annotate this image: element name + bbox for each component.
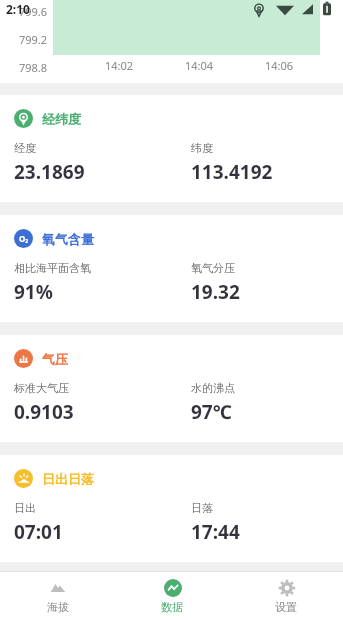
staticText: 氧气分压 bbox=[191, 261, 235, 275]
staticText: 氧气含量 bbox=[42, 231, 94, 247]
staticText: 日出日落 bbox=[42, 471, 94, 487]
button[interactable]: 日出日落 bbox=[0, 455, 343, 562]
staticText: 97℃ bbox=[191, 399, 232, 425]
staticText: 17:44 bbox=[191, 519, 240, 545]
staticText: 14:02 bbox=[105, 58, 134, 73]
staticText: 23.1869 bbox=[14, 159, 85, 185]
staticText: 数据 bbox=[161, 600, 183, 614]
staticText: 19.32 bbox=[191, 279, 240, 305]
staticText: 设置 bbox=[275, 600, 297, 614]
staticText: 113.4192 bbox=[191, 159, 273, 185]
staticText: 海拔 bbox=[47, 600, 69, 614]
button[interactable]: O₂ bbox=[0, 215, 343, 322]
staticText: 相比海平面含氧 bbox=[14, 261, 91, 275]
staticText: 经纬度 bbox=[42, 111, 81, 127]
staticText: 标准大气压 bbox=[14, 381, 69, 395]
staticText: 经度 bbox=[14, 141, 36, 155]
staticText: 气压 bbox=[42, 351, 68, 367]
staticText: 91% bbox=[14, 279, 53, 305]
staticText: 日落 bbox=[191, 501, 213, 515]
button[interactable]: 海拔 bbox=[0, 572, 115, 620]
staticText: 日出 bbox=[14, 501, 36, 515]
staticText: 2:10 bbox=[6, 1, 30, 17]
staticText: 14:06 bbox=[265, 58, 294, 73]
button[interactable]: 经纬度 bbox=[0, 95, 343, 202]
staticText: 798.8 bbox=[0, 60, 47, 75]
staticText: 水的沸点 bbox=[191, 381, 235, 395]
button[interactable]: 数据 bbox=[115, 572, 229, 620]
staticText: 纬度 bbox=[191, 141, 213, 155]
button[interactable]: 设置 bbox=[229, 572, 343, 620]
staticText: 799.6 bbox=[0, 4, 47, 19]
staticText: 14:04 bbox=[185, 58, 214, 73]
staticText: 0.9103 bbox=[14, 399, 74, 425]
staticText: O₂ bbox=[19, 233, 29, 244]
staticText: 07:01 bbox=[14, 519, 63, 545]
staticText: 799.2 bbox=[0, 32, 47, 47]
button[interactable]: 气压 bbox=[0, 335, 343, 442]
